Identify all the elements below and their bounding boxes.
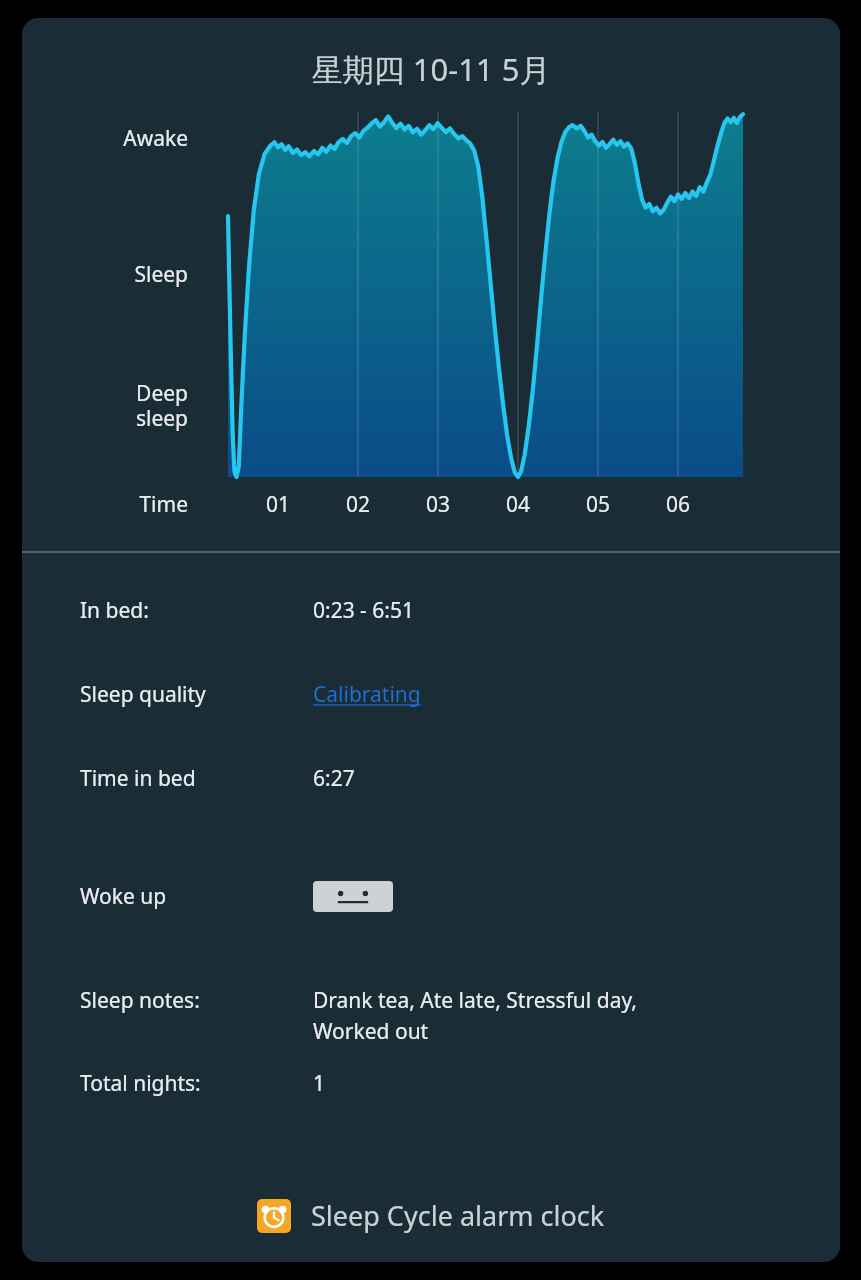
staticText: 03: [418, 490, 458, 519]
staticText: 0:23 - 6:51: [313, 596, 415, 625]
staticText: Sleep Cycle alarm clock: [311, 1197, 605, 1234]
staticText: 05: [578, 490, 618, 519]
staticText: Time in bed: [80, 764, 313, 793]
button[interactable]: Time in bed: [80, 764, 840, 793]
staticText: 06: [658, 490, 698, 519]
staticText: In bed:: [80, 596, 313, 625]
staticText: Time: [58, 490, 188, 519]
staticText: Deep sleep: [58, 379, 188, 432]
staticText: 6:27: [313, 764, 355, 793]
staticText: 04: [498, 490, 538, 519]
staticText: Woke up: [80, 882, 313, 911]
button[interactable]: Calibrating: [313, 680, 421, 709]
button[interactable]: Sleep Cycle alarm clock: [22, 1197, 840, 1262]
staticText: Total nights:: [80, 1069, 313, 1098]
staticText: Drank tea, Ate late, Stressful day, Work…: [313, 986, 637, 1045]
button[interactable]: Sleep notes:: [80, 986, 840, 1045]
other: Woke up feeling neutral: [313, 881, 393, 912]
button[interactable]: Sleep quality: [80, 680, 840, 709]
button[interactable]: In bed:: [80, 596, 840, 625]
staticText: 02: [338, 490, 378, 519]
staticText: 01: [258, 490, 298, 519]
staticText: Awake: [58, 124, 188, 153]
button[interactable]: Total nights:: [80, 1069, 840, 1098]
staticText: Sleep quality: [80, 680, 313, 709]
staticText: Sleep notes:: [80, 986, 313, 1015]
button[interactable]: Woke up: [80, 881, 840, 912]
staticText: 星期四 10-11 5月: [22, 48, 840, 90]
staticText: 1: [313, 1069, 326, 1098]
staticText: Sleep: [58, 260, 188, 289]
